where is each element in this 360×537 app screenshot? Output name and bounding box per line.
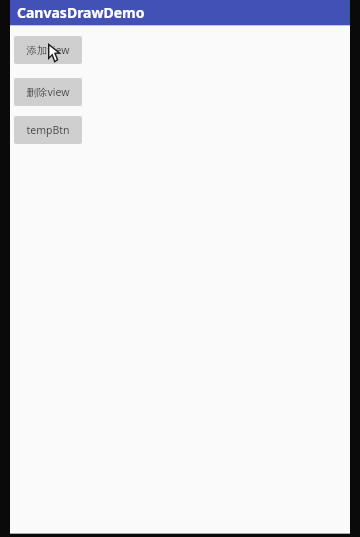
staticText: 添加view <box>26 43 70 57</box>
staticText: tempBtn <box>26 123 70 137</box>
staticText: CanvasDrawDemo <box>17 3 145 22</box>
button[interactable]: 删除view <box>14 78 82 106</box>
button[interactable]: tempBtn <box>14 116 82 144</box>
staticText: 删除view <box>26 85 70 99</box>
button[interactable]: 添加view <box>14 36 82 64</box>
